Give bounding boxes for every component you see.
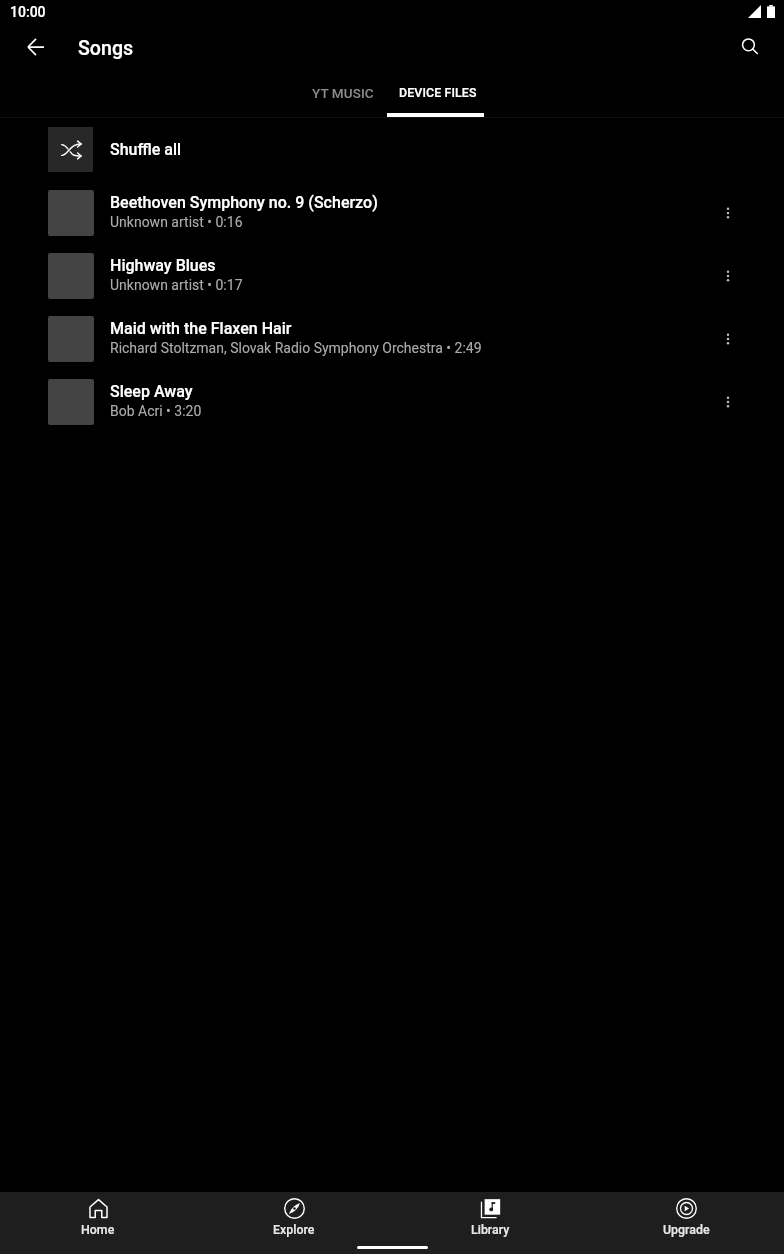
button[interactable]: Home [0, 1192, 196, 1239]
staticText: Highway Blues [110, 256, 216, 275]
staticText: Sleep Away [110, 382, 193, 401]
button[interactable]: More options [704, 315, 752, 363]
staticText: Upgrade [663, 1222, 710, 1237]
button[interactable]: Highway Blues [0, 244, 784, 307]
button[interactable]: More options [704, 378, 752, 426]
staticText: Library [471, 1222, 510, 1237]
button[interactable]: Back [12, 23, 60, 71]
button[interactable]: Shuffle all [0, 118, 784, 181]
staticText: Songs [78, 37, 134, 60]
staticText: Shuffle all [110, 140, 182, 159]
staticText: Unknown artist • 0:16 [110, 214, 243, 230]
staticText: YT MUSIC [312, 85, 374, 101]
button[interactable]: More options [704, 252, 752, 300]
staticText: Unknown artist • 0:17 [110, 277, 243, 293]
staticText: 10:00 [10, 4, 46, 20]
button[interactable]: Sleep Away [0, 370, 784, 433]
button[interactable]: Explore [196, 1192, 392, 1239]
button[interactable]: Library [392, 1192, 588, 1239]
button[interactable]: More options [704, 189, 752, 237]
staticText: Maid with the Flaxen Hair [110, 319, 292, 338]
button[interactable]: DEVICE FILES [389, 72, 486, 117]
button[interactable]: YT MUSIC [297, 72, 389, 117]
staticText: Bob Acri • 3:20 [110, 403, 202, 419]
button[interactable]: Maid with the Flaxen Hair [0, 307, 784, 370]
button[interactable]: Upgrade [588, 1192, 784, 1239]
button[interactable]: Search [726, 23, 774, 71]
staticText: DEVICE FILES [399, 85, 477, 100]
staticText: Home [81, 1222, 115, 1237]
button[interactable]: Beethoven Symphony no. 9 (Scherzo) [0, 181, 784, 244]
staticText: Richard Stoltzman, Slovak Radio Symphony… [110, 340, 482, 356]
staticText: Explore [273, 1222, 315, 1237]
staticText: Beethoven Symphony no. 9 (Scherzo) [110, 193, 378, 212]
